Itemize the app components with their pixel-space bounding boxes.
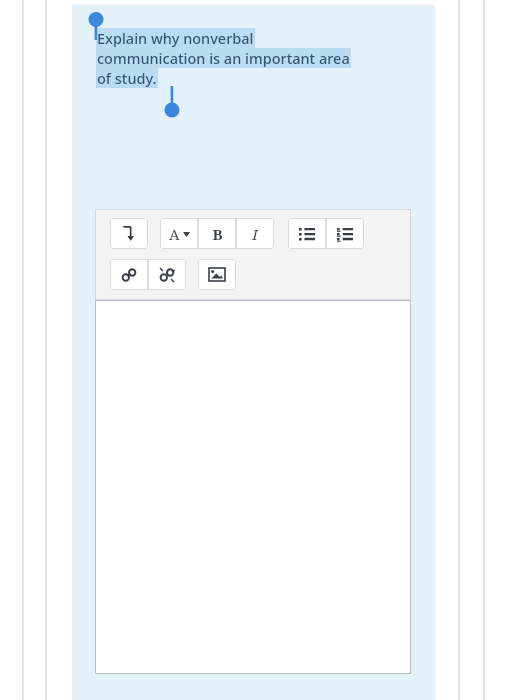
staticText: of study. — [97, 68, 157, 88]
button[interactable]: Bulleted list — [288, 218, 326, 249]
staticText: communication is an important area — [97, 48, 350, 68]
button[interactable]: Remove link — [148, 259, 186, 290]
button[interactable]: Italic — [236, 218, 274, 249]
button[interactable]: Numbered list — [326, 218, 364, 249]
staticText: A — [169, 224, 180, 244]
staticText: B — [212, 224, 223, 244]
button[interactable]: Indent — [110, 218, 148, 249]
button[interactable]: Bold — [198, 218, 236, 249]
button[interactable]: Insert link — [110, 259, 148, 290]
button[interactable]: Font — [160, 218, 198, 249]
staticText: I — [252, 224, 258, 244]
staticText: Explain why nonverbal — [97, 28, 254, 48]
button[interactable]: Insert image — [198, 259, 236, 290]
button[interactable] — [95, 300, 411, 674]
